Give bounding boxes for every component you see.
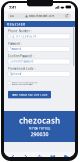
- staticText: AA: [10, 14, 14, 18]
- button[interactable]: Bookmarks: [48, 153, 57, 160]
- staticText: Optional: [10, 72, 22, 76]
- staticText: Confirm Password: [10, 60, 34, 63]
- button[interactable]: Page settings: [8, 13, 16, 19]
- staticText: Password :: [8, 42, 22, 45]
- staticText: 290030: [30, 130, 48, 138]
- staticText: Promotional Code :: [8, 67, 36, 70]
- staticText: chezocash: [19, 115, 60, 126]
- staticText: MPESA PAYBILL: [29, 127, 50, 130]
- staticText: SEND REGISTRATION CODE: [12, 93, 47, 96]
- staticText: Phone Number :: [8, 29, 32, 33]
- button[interactable]: Share: [35, 153, 44, 160]
- staticText: I am over 18 years of age and I accept t…: [12, 82, 37, 85]
- button[interactable]: Reload: [63, 13, 71, 19]
- staticText: REGISTER: [7, 21, 26, 27]
- staticText: e.g. 0712345678: [10, 35, 37, 38]
- staticText: 9:41: [9, 4, 16, 10]
- staticText: Password: [10, 47, 22, 51]
- button[interactable]: Tabs: [62, 153, 71, 160]
- button[interactable]: Back: [8, 153, 17, 160]
- button[interactable]: Forward: [22, 153, 31, 160]
- staticText: www.chezocash.com: [29, 14, 54, 18]
- staticText: Confirm Password :: [8, 54, 34, 58]
- button[interactable]: SEND REGISTRATION CODE: [8, 91, 51, 98]
